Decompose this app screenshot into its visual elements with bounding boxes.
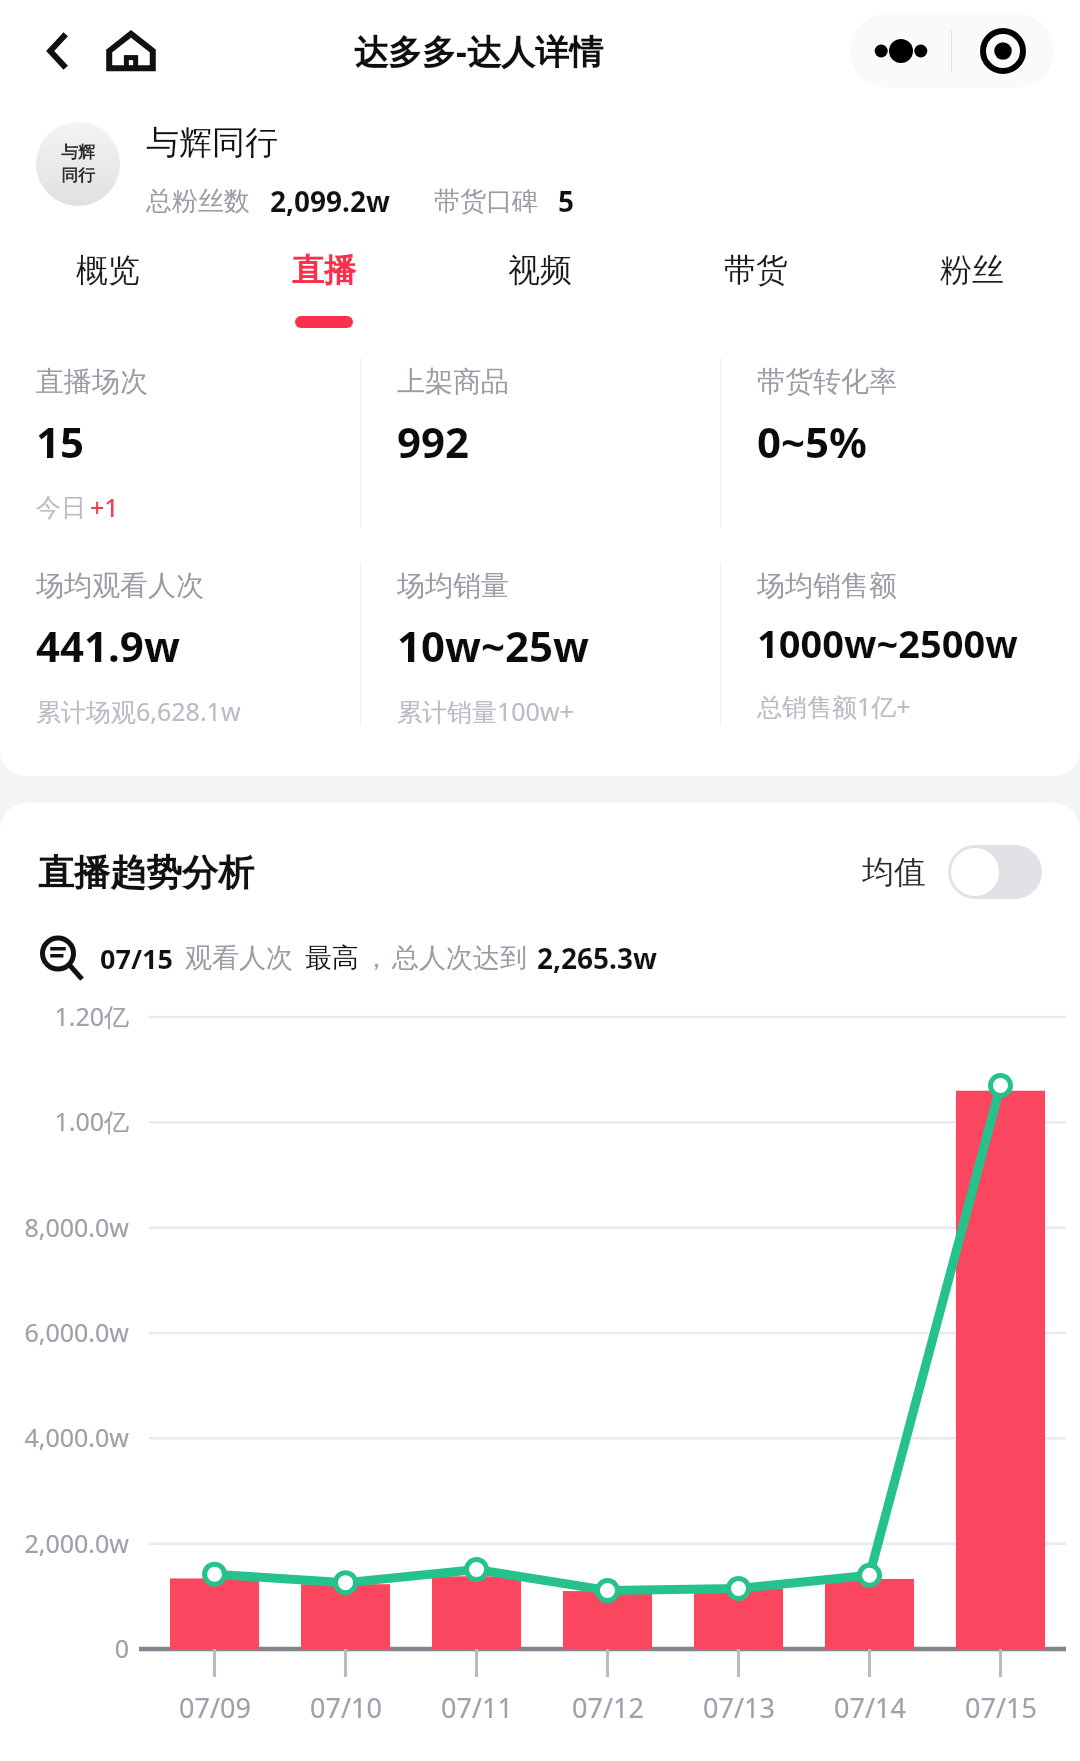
- staticText: 2,000.0w: [24, 1526, 129, 1560]
- staticText: 07/09: [179, 1689, 251, 1726]
- staticText: 6,000.0w: [24, 1315, 129, 1349]
- staticText: 与辉 同行: [61, 142, 95, 186]
- staticText: 今日: [36, 492, 86, 523]
- staticText: 07/13: [703, 1689, 775, 1726]
- staticText: 场均销售额: [757, 568, 897, 603]
- staticText: 0~5%: [757, 413, 867, 470]
- staticText: 07/15: [100, 940, 173, 977]
- staticText: 总人次达到: [392, 941, 527, 975]
- staticText: 1000w~2500w: [757, 617, 1018, 669]
- staticText: 直播场次: [36, 364, 148, 399]
- staticText: 上架商品: [397, 364, 509, 399]
- button[interactable]: 粉丝: [864, 244, 1080, 340]
- staticText: 1.00亿: [54, 1104, 129, 1138]
- button[interactable]: Home: [98, 18, 164, 84]
- button[interactable]: 上架商品: [397, 364, 720, 534]
- staticText: 2,265.3w: [537, 939, 657, 977]
- staticText: 07/14: [834, 1689, 906, 1726]
- staticText: 场均观看人次: [36, 568, 204, 603]
- staticText: 视频: [508, 250, 572, 290]
- staticText: 均值: [862, 852, 926, 892]
- button[interactable]: 带货: [648, 244, 864, 340]
- staticText: 5: [558, 182, 575, 220]
- staticText: 4,000.0w: [24, 1420, 129, 1454]
- staticText: 累计销量100w+: [397, 694, 574, 728]
- button[interactable]: Average toggle: [948, 845, 1042, 899]
- button[interactable]: 场均销量: [397, 568, 720, 732]
- staticText: 2,099.2w: [270, 182, 390, 220]
- staticText: 441.9w: [36, 617, 180, 674]
- staticText: 最高: [305, 941, 359, 975]
- staticText: 992: [397, 413, 470, 470]
- staticText: 8,000.0w: [24, 1210, 129, 1244]
- staticText: 07/12: [572, 1689, 644, 1726]
- staticText: 直播: [292, 250, 356, 290]
- staticText: 10w~25w: [397, 617, 590, 674]
- button[interactable]: 概览: [0, 244, 216, 340]
- button[interactable]: Back: [22, 20, 84, 82]
- staticText: 带货转化率: [757, 364, 897, 399]
- staticText: 直播趋势分析: [38, 850, 254, 895]
- staticText: 概览: [76, 250, 140, 290]
- staticText: 15: [36, 413, 85, 470]
- staticText: 总销售额1亿+: [757, 689, 911, 723]
- button[interactable]: 直播: [216, 244, 432, 340]
- staticText: 总粉丝数: [146, 185, 250, 218]
- button[interactable]: 视频: [432, 244, 648, 340]
- button[interactable]: 直播场次: [36, 364, 360, 534]
- staticText: +1: [90, 490, 119, 524]
- button[interactable]: More options and close: [850, 14, 1054, 88]
- staticText: ，: [363, 941, 390, 975]
- staticText: 07/15: [965, 1689, 1037, 1726]
- button[interactable]: 场均观看人次: [36, 568, 360, 732]
- staticText: 场均销量: [397, 568, 509, 603]
- staticText: 与辉同行: [146, 122, 278, 164]
- staticText: 累计场观6,628.1w: [36, 694, 241, 728]
- staticText: 粉丝: [940, 250, 1004, 290]
- button[interactable]: 场均销售额: [757, 568, 1080, 732]
- staticText: 达多多-达人详情: [354, 28, 603, 74]
- staticText: 07/10: [310, 1689, 382, 1726]
- staticText: 0: [114, 1631, 129, 1665]
- staticText: 观看人次: [185, 941, 293, 975]
- staticText: 1.20亿: [54, 999, 129, 1033]
- staticText: 带货: [724, 250, 788, 290]
- staticText: 07/11: [441, 1689, 513, 1726]
- button[interactable]: 带货转化率: [757, 364, 1080, 534]
- staticText: 带货口碑: [434, 185, 538, 218]
- button[interactable]: 与辉 同行: [36, 122, 1056, 220]
